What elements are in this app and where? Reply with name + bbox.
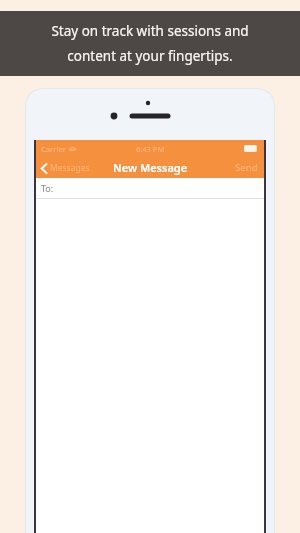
staticText: Carrier [41,144,66,154]
staticText: 6:43 PM [136,144,165,154]
button[interactable]: Send [229,158,264,177]
staticText: Stay on track with sessions and [51,22,249,40]
staticText: Send [235,161,258,174]
staticText: New Message [113,160,188,175]
staticText: Messages [50,162,90,174]
button[interactable]: Messages [36,159,94,177]
staticText: content at your fingertips. [67,47,233,65]
button[interactable]: To: [36,178,264,198]
staticText: To: [41,182,54,194]
